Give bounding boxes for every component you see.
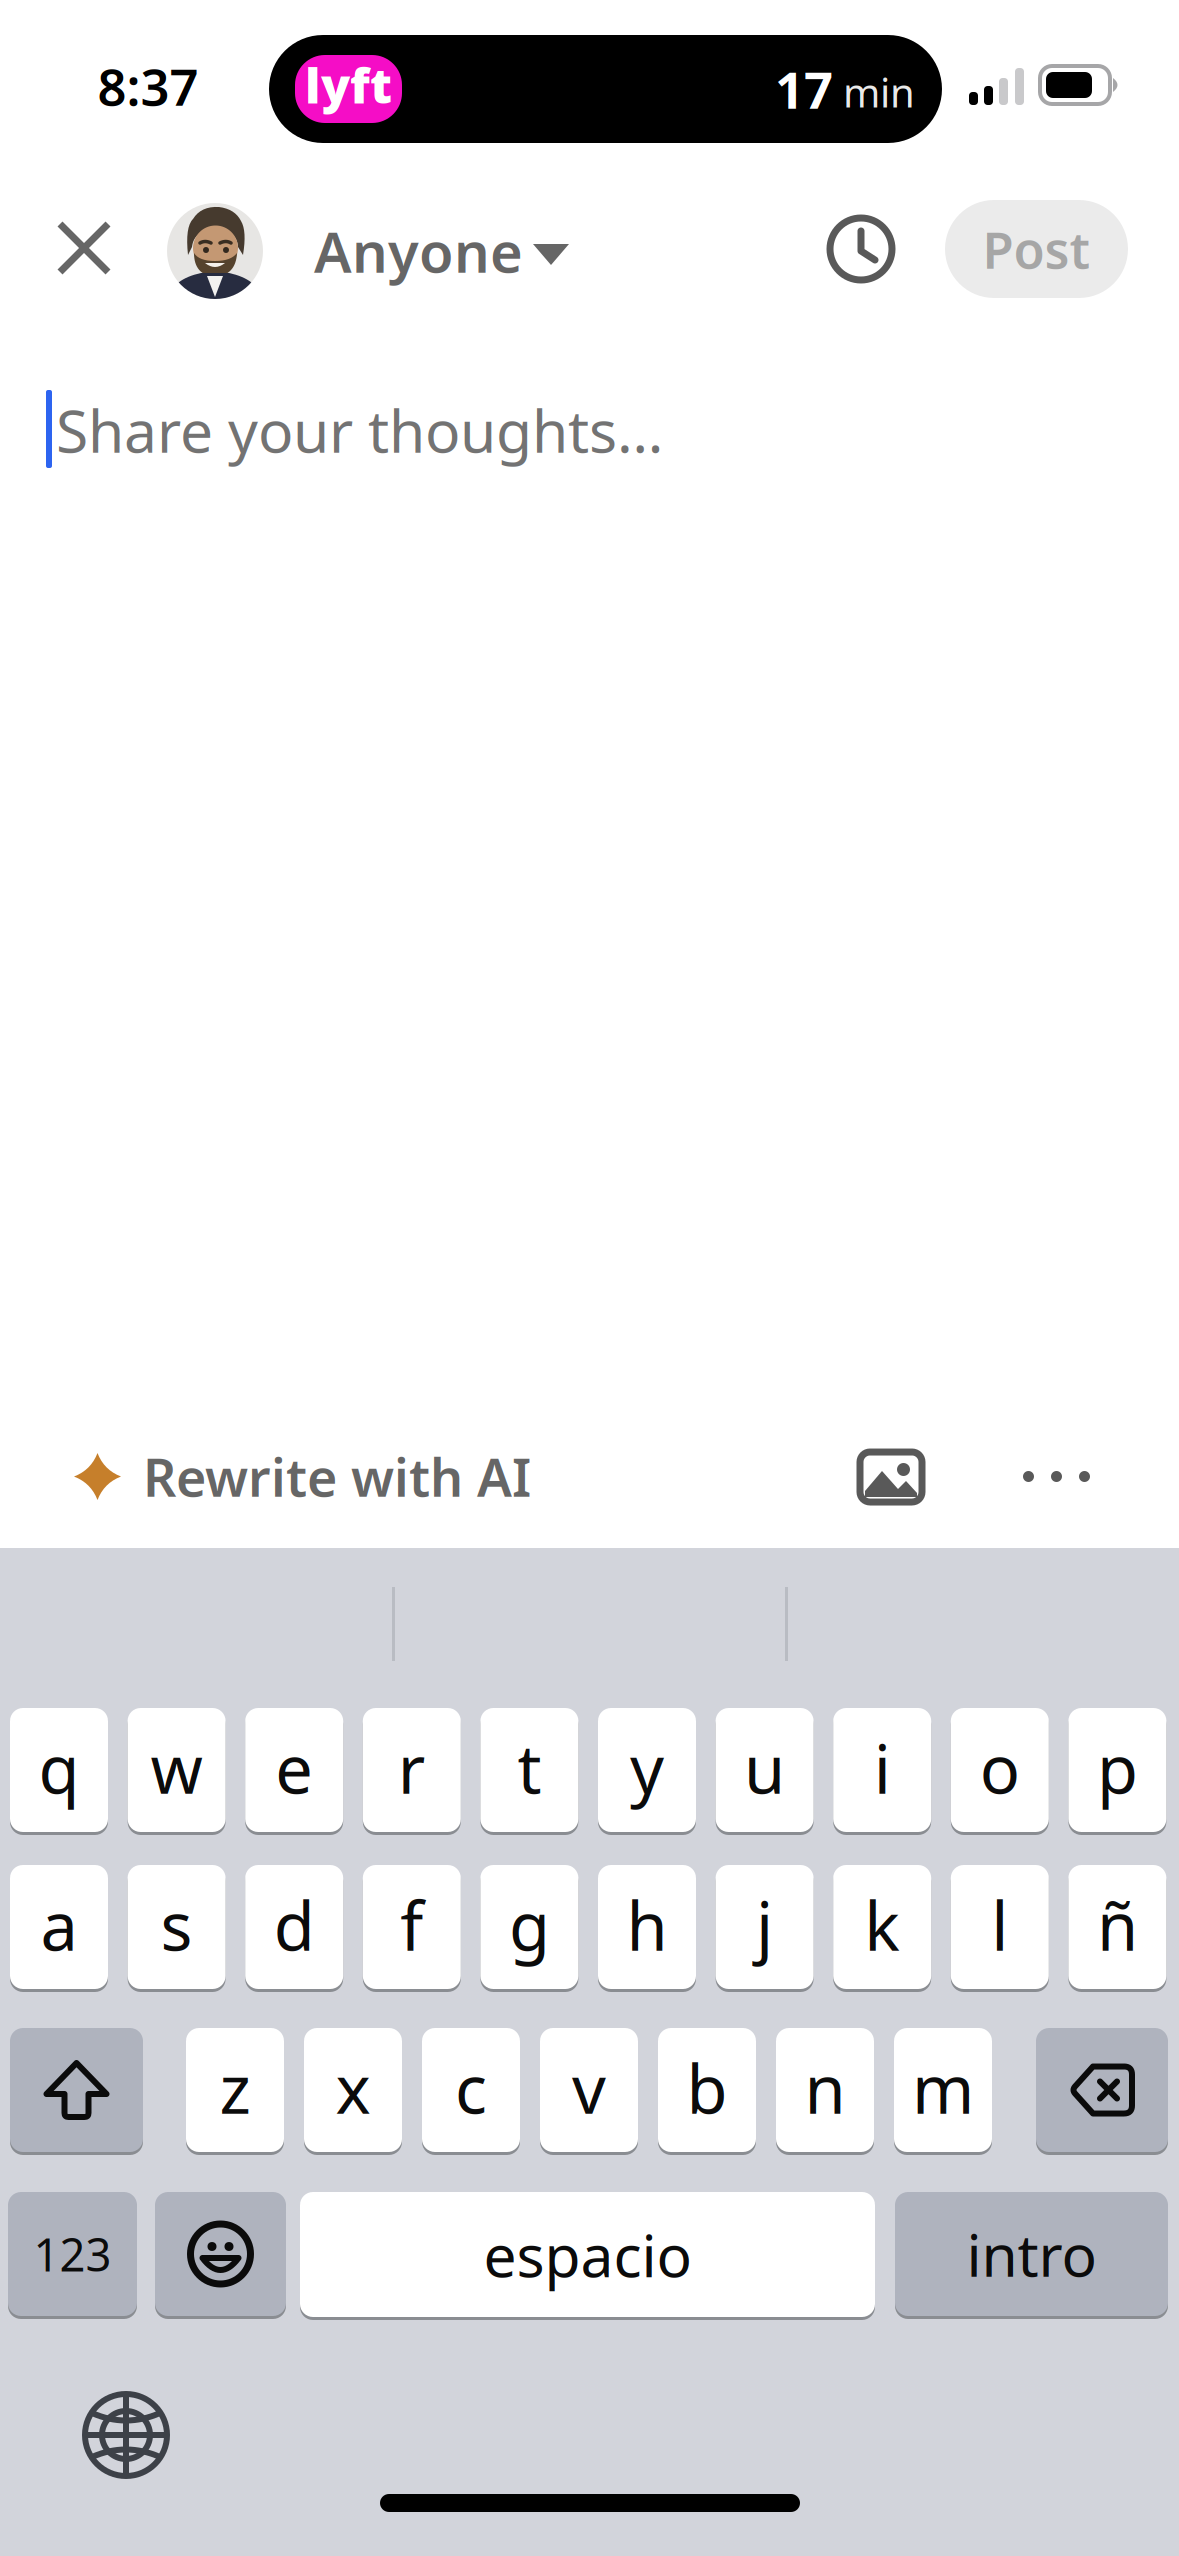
staticText: l bbox=[991, 1881, 1008, 1969]
button[interactable]: Delete bbox=[1036, 2028, 1168, 2155]
staticText: g bbox=[509, 1881, 550, 1969]
staticText: h bbox=[626, 1881, 667, 1969]
staticText: y bbox=[630, 1724, 664, 1812]
staticText: lyft bbox=[305, 53, 392, 117]
button[interactable]: m bbox=[894, 2028, 992, 2155]
staticText: w bbox=[151, 1724, 203, 1812]
button[interactable]: t bbox=[480, 1708, 578, 1835]
staticText: k bbox=[864, 1881, 900, 1969]
button[interactable]: Rewrite with AI bbox=[74, 1442, 531, 1511]
button[interactable]: Emoji bbox=[155, 2192, 286, 2319]
button[interactable]: p bbox=[1068, 1708, 1166, 1835]
button[interactable]: f bbox=[363, 1865, 461, 1992]
button[interactable]: Anyone bbox=[167, 203, 569, 299]
staticText: c bbox=[455, 2044, 487, 2132]
staticText: q bbox=[38, 1724, 79, 1812]
button[interactable]: j bbox=[716, 1865, 814, 1992]
button[interactable]: r bbox=[363, 1708, 461, 1835]
staticText: min bbox=[843, 65, 915, 118]
button[interactable]: b bbox=[658, 2028, 756, 2155]
button[interactable]: e bbox=[245, 1708, 343, 1835]
button[interactable]: More options bbox=[1009, 1457, 1104, 1496]
button[interactable]: w bbox=[128, 1708, 226, 1835]
button[interactable]: a bbox=[10, 1865, 108, 1992]
button[interactable]: l bbox=[951, 1865, 1049, 1992]
staticText: 123 bbox=[33, 2224, 111, 2284]
staticText: n bbox=[804, 2044, 845, 2132]
button[interactable]: k bbox=[833, 1865, 931, 1992]
button[interactable]: q bbox=[10, 1708, 108, 1835]
button[interactable]: espacio bbox=[300, 2192, 875, 2320]
staticText: s bbox=[161, 1881, 193, 1969]
staticText: j bbox=[756, 1881, 773, 1969]
staticText: espacio bbox=[483, 2215, 691, 2293]
button[interactable]: Dismiss bbox=[40, 204, 128, 292]
staticText: z bbox=[219, 2044, 250, 2132]
button[interactable]: Schedule post bbox=[818, 206, 904, 292]
staticText: ñ bbox=[1097, 1881, 1138, 1969]
button[interactable]: n bbox=[776, 2028, 874, 2155]
staticText: m bbox=[912, 2044, 974, 2132]
staticText: d bbox=[274, 1881, 315, 1969]
button[interactable]: y bbox=[598, 1708, 696, 1835]
button[interactable]: v bbox=[540, 2028, 638, 2155]
button[interactable]: u bbox=[716, 1708, 814, 1835]
button[interactable]: Post bbox=[945, 200, 1128, 298]
button[interactable]: z bbox=[186, 2028, 284, 2155]
staticText: Rewrite with AI bbox=[143, 1442, 531, 1511]
button[interactable]: Shift bbox=[10, 2028, 143, 2155]
button[interactable]: Next keyboard bbox=[75, 2384, 177, 2486]
staticText: Share your thoughts… bbox=[56, 391, 663, 469]
button[interactable]: d bbox=[245, 1865, 343, 1992]
staticText: f bbox=[400, 1881, 423, 1969]
staticText: a bbox=[40, 1881, 77, 1969]
button[interactable]: 123 bbox=[8, 2192, 137, 2319]
staticText: b bbox=[686, 2044, 727, 2132]
staticText: i bbox=[874, 1724, 891, 1812]
button[interactable]: c bbox=[422, 2028, 520, 2155]
staticText: Post bbox=[982, 215, 1090, 283]
button[interactable]: intro bbox=[895, 2192, 1168, 2319]
staticText: 8:37 bbox=[97, 52, 198, 120]
button[interactable]: i bbox=[833, 1708, 931, 1835]
staticText: o bbox=[980, 1724, 1020, 1812]
button[interactable]: o bbox=[951, 1708, 1049, 1835]
staticText: u bbox=[744, 1724, 785, 1812]
staticText: t bbox=[517, 1724, 541, 1812]
staticText: Anyone bbox=[314, 214, 523, 288]
button[interactable]: s bbox=[128, 1865, 226, 1992]
staticText: p bbox=[1097, 1724, 1138, 1812]
staticText: e bbox=[275, 1724, 313, 1812]
button[interactable]: ñ bbox=[1068, 1865, 1166, 1992]
staticText: v bbox=[572, 2044, 606, 2132]
button[interactable]: x bbox=[304, 2028, 402, 2155]
staticText: r bbox=[398, 1724, 426, 1812]
button[interactable]: Add media bbox=[846, 1438, 936, 1516]
staticText: intro bbox=[966, 2215, 1096, 2293]
staticText: x bbox=[335, 2044, 370, 2132]
staticText: 17 bbox=[775, 55, 833, 123]
button[interactable]: h bbox=[598, 1865, 696, 1992]
button[interactable]: g bbox=[480, 1865, 578, 1992]
